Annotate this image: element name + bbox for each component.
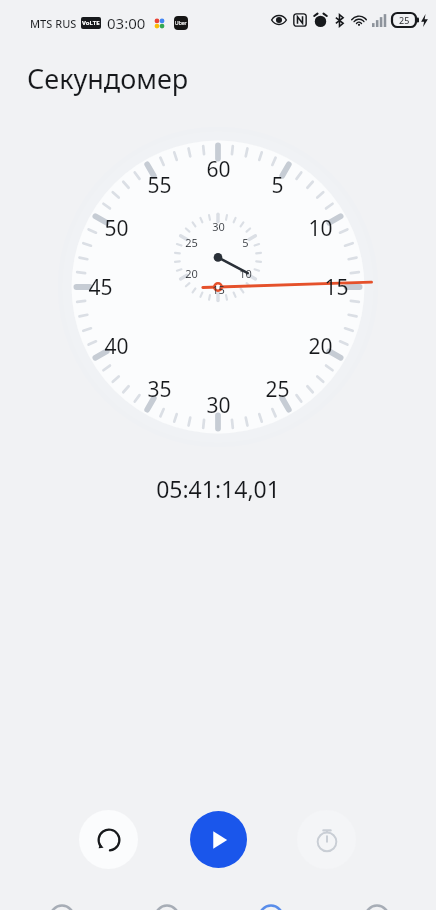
- staticText: Uber: [175, 20, 187, 27]
- button[interactable]: Tab 1: [48, 900, 76, 910]
- staticText: 25: [265, 375, 290, 404]
- staticText: 40: [104, 332, 129, 361]
- staticText: 25: [185, 235, 198, 250]
- staticText: 10: [308, 214, 333, 243]
- staticText: 30: [212, 219, 225, 234]
- staticText: 25: [399, 14, 410, 26]
- staticText: 20: [185, 266, 198, 281]
- staticText: 5: [271, 171, 284, 200]
- staticText: MTS RUS: [30, 16, 77, 31]
- staticText: 03:00: [107, 13, 146, 33]
- staticText: Секундомер: [27, 60, 189, 97]
- button[interactable]: Tab 3: [257, 900, 285, 910]
- staticText: 45: [88, 273, 113, 302]
- staticText: 10: [239, 266, 252, 281]
- button[interactable]: Start: [190, 811, 247, 868]
- button[interactable]: Tab 2: [153, 900, 181, 910]
- staticText: 60: [206, 155, 231, 184]
- staticText: 35: [147, 375, 172, 404]
- staticText: 20: [308, 332, 333, 361]
- staticText: 55: [147, 171, 172, 200]
- staticText: 50: [104, 214, 129, 243]
- button[interactable]: Tab 4: [363, 900, 391, 910]
- staticText: 5: [242, 235, 249, 250]
- staticText: 15: [212, 282, 225, 297]
- staticText: VoLTE: [82, 19, 100, 27]
- button[interactable]: Lap: [297, 810, 356, 869]
- staticText: 05:41:14,01: [156, 473, 280, 504]
- button[interactable]: Reset: [79, 810, 138, 869]
- staticText: 30: [206, 391, 231, 420]
- staticText: 15: [324, 273, 349, 302]
